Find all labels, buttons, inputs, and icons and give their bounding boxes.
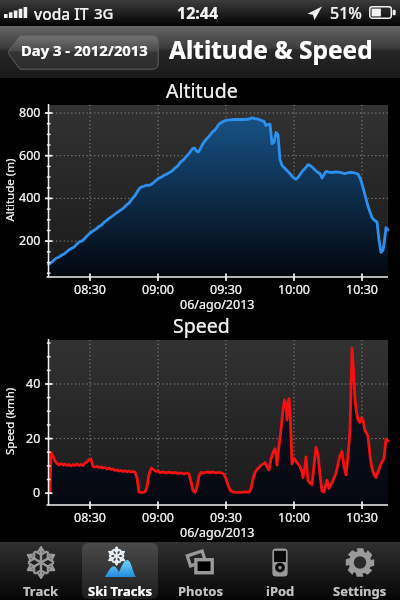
- staticText: Track: [23, 582, 58, 599]
- staticText: 0: [33, 484, 41, 501]
- staticText: 09:00: [142, 281, 174, 298]
- staticText: Altitude (m): [1, 158, 17, 221]
- button[interactable]: Photos: [162, 543, 238, 599]
- staticText: 10:00: [278, 281, 310, 298]
- staticText: 09:30: [210, 281, 242, 298]
- staticText: Day 3 - 2012/2013: [21, 40, 148, 60]
- staticText: 08:30: [74, 509, 106, 526]
- staticText: 400: [19, 189, 41, 206]
- staticText: 600: [19, 147, 41, 164]
- staticText: 3G: [94, 3, 114, 23]
- staticText: Photos: [178, 582, 223, 599]
- staticText: iPod: [266, 582, 295, 599]
- staticText: 12:44: [177, 2, 219, 24]
- staticText: voda IT: [34, 3, 89, 24]
- staticText: Altitude: [166, 77, 238, 104]
- staticText: 40: [26, 375, 41, 392]
- staticText: 800: [19, 104, 41, 121]
- button[interactable]: Track: [2, 543, 78, 599]
- staticText: 10:30: [346, 281, 378, 298]
- staticText: 09:30: [210, 509, 242, 526]
- staticText: 10:30: [346, 509, 378, 526]
- staticText: 08:30: [74, 281, 106, 298]
- staticText: Ski Tracks: [88, 582, 152, 599]
- staticText: 10:00: [278, 509, 310, 526]
- staticText: 09:00: [142, 509, 174, 526]
- button[interactable]: Back: [7, 35, 159, 70]
- staticText: 51%: [330, 2, 362, 24]
- button[interactable]: Settings: [322, 543, 398, 599]
- button[interactable]: iPod: [242, 543, 318, 599]
- staticText: 20: [26, 430, 41, 447]
- staticText: Altitude & Speed: [169, 33, 373, 66]
- staticText: 06/ago/2013: [180, 296, 255, 313]
- staticText: Speed: [173, 312, 230, 339]
- staticText: Speed (kmh): [2, 387, 18, 455]
- button[interactable]: Ski Tracks: [82, 543, 158, 599]
- staticText: 06/ago/2013: [180, 524, 255, 541]
- staticText: 200: [19, 232, 41, 249]
- staticText: Settings: [333, 582, 387, 599]
